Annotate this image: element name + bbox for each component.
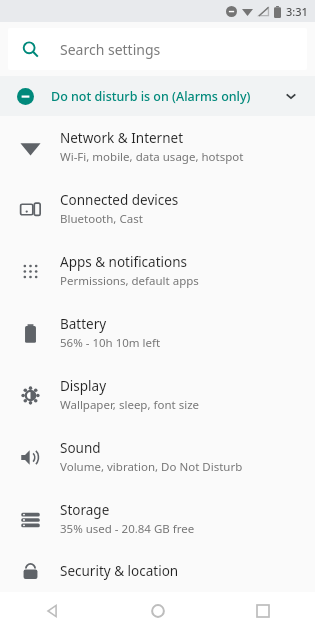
staticText: Wallpaper, sleep, font size (60, 397, 200, 413)
staticText: Permissions, default apps (60, 273, 199, 289)
button[interactable]: Display (0, 364, 315, 426)
staticText: Bluetooth, Cast (60, 211, 143, 227)
staticText: Do not disturb is on (Alarms only) (51, 88, 251, 105)
staticText: Display (60, 377, 107, 395)
button[interactable]: Network & Internet (0, 116, 315, 178)
button[interactable]: Connected devices (0, 178, 315, 240)
staticText: 3:31 (286, 4, 308, 19)
staticText: Battery (60, 315, 107, 333)
staticText: Apps & notifications (60, 253, 187, 271)
staticText: Network & Internet (60, 129, 184, 147)
button[interactable]: Storage (0, 488, 315, 550)
button[interactable]: Back (0, 592, 105, 630)
button[interactable]: Home (105, 592, 210, 630)
button[interactable]: Do not disturb is on (Alarms only) (0, 76, 315, 116)
staticText: 35% used - 20.84 GB free (60, 521, 195, 537)
staticText: Sound (60, 439, 101, 457)
button[interactable]: Expand (279, 84, 303, 108)
button[interactable]: Battery (0, 302, 315, 364)
staticText: Storage (60, 501, 110, 519)
button[interactable]: Security & location (0, 550, 315, 592)
staticText: Search settings (60, 40, 161, 59)
staticText: Volume, vibration, Do Not Disturb (60, 459, 243, 475)
button[interactable]: Search settings (8, 28, 307, 70)
button[interactable]: Apps & notifications (0, 240, 315, 302)
button[interactable]: Recent apps (210, 592, 315, 630)
staticText: Security & location (60, 562, 179, 580)
button[interactable]: Sound (0, 426, 315, 488)
staticText: Connected devices (60, 191, 179, 209)
staticText: Wi-Fi, mobile, data usage, hotspot (60, 149, 244, 165)
staticText: 56% - 10h 10m left (60, 335, 161, 351)
